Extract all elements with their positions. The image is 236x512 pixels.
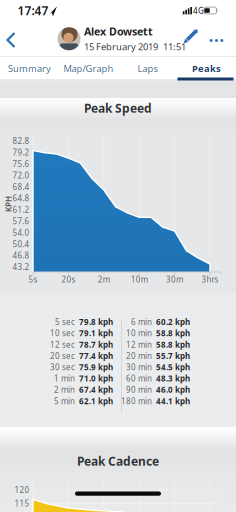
staticText: Peak Cadence <box>77 453 159 469</box>
staticText: 68.4 <box>12 181 29 192</box>
staticText: 75.6 <box>12 159 29 169</box>
staticText: 60.2 kph <box>156 317 190 327</box>
staticText: 82.8 <box>12 136 29 146</box>
staticText: Peaks <box>192 62 221 75</box>
staticText: Peak Speed <box>84 100 152 116</box>
staticText: 61.2 <box>12 204 29 215</box>
staticText: 10 sec <box>50 328 75 338</box>
staticText: 58.8 kph <box>156 328 190 338</box>
staticText: 90 min <box>126 384 152 395</box>
staticText: 15 February 2019 <box>84 40 158 53</box>
button[interactable]: Back <box>3 30 19 50</box>
staticText: 30m <box>166 274 183 285</box>
staticText: 48.3 kph <box>156 373 190 384</box>
staticText: 30 sec <box>50 362 75 372</box>
staticText: Laps <box>137 62 157 75</box>
staticText: 10 min <box>126 328 152 338</box>
staticText: Summary <box>8 62 51 75</box>
staticText: 72.0 <box>12 170 29 181</box>
staticText: 44.1 kph <box>156 396 190 406</box>
staticText: 43.2 <box>12 262 29 272</box>
staticText: 20s <box>61 274 75 285</box>
staticText: 54.5 kph <box>156 362 190 372</box>
staticText: 12 min <box>126 339 152 350</box>
staticText: 4G <box>193 5 204 16</box>
staticText: 46.8 <box>12 250 29 261</box>
staticText: 79.1 kph <box>79 328 113 338</box>
staticText: 115 <box>14 498 29 509</box>
staticText: 1 min <box>54 373 75 384</box>
staticText: 79.2 <box>12 147 29 158</box>
staticText: 62.1 kph <box>79 396 113 406</box>
staticText: 5 sec <box>55 317 75 327</box>
staticText: 180 min <box>121 396 152 406</box>
button[interactable]: Summary <box>0 57 59 80</box>
staticText: 5s <box>28 274 37 285</box>
staticText: Map/Graph <box>63 62 113 75</box>
staticText: Alex Dowsett <box>84 24 153 38</box>
staticText: KPH <box>0 199 16 209</box>
staticText: 46.0 kph <box>156 384 190 395</box>
staticText: 77.4 kph <box>79 350 113 361</box>
staticText: 67.4 kph <box>79 384 113 395</box>
staticText: 5 min <box>54 396 75 406</box>
staticText: 11:51 <box>163 40 186 53</box>
staticText: 12 sec <box>50 339 75 350</box>
button[interactable]: Edit <box>182 28 199 45</box>
staticText: 120 <box>14 485 29 495</box>
staticText: 54.0 <box>12 227 29 238</box>
staticText: 78.7 kph <box>79 339 113 350</box>
staticText: 2 min <box>54 384 75 395</box>
staticText: 6 min <box>131 317 152 327</box>
staticText: 3hrs <box>201 274 218 285</box>
staticText: 58.8 kph <box>156 339 190 350</box>
staticText: 71.0 kph <box>79 373 113 384</box>
staticText: 57.6 <box>12 216 29 226</box>
staticText: 55.7 kph <box>156 350 190 361</box>
staticText: 10m <box>131 274 148 285</box>
staticText: 17:47 <box>17 2 48 18</box>
button[interactable]: More <box>210 39 223 42</box>
staticText: 50.4 <box>12 239 29 249</box>
staticText: 20 sec <box>50 350 75 361</box>
staticText: 2m <box>98 274 110 285</box>
staticText: 75.9 kph <box>79 362 113 372</box>
staticText: 79.8 kph <box>79 317 113 327</box>
staticText: 60 min <box>126 373 152 384</box>
staticText: 64.8 <box>12 193 29 203</box>
button[interactable]: Laps <box>118 57 177 80</box>
button[interactable]: Peaks <box>177 57 236 80</box>
staticText: 20 min <box>126 350 152 361</box>
staticText: 30 min <box>126 362 152 372</box>
button[interactable]: Map/Graph <box>59 57 118 80</box>
